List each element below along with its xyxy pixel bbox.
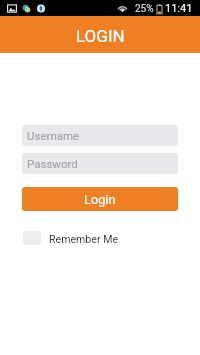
staticText: 11:41: [165, 2, 193, 15]
other: Wi-Fi signal: [117, 4, 128, 13]
button[interactable]: Remember Me: [23, 231, 124, 245]
button[interactable]: Password: [22, 153, 178, 174]
staticText: Password: [27, 157, 78, 170]
staticText: Username: [27, 129, 80, 142]
other: Screenshot captured: [7, 4, 17, 13]
staticText: Remember Me: [49, 233, 118, 245]
button[interactable]: Login: [22, 187, 178, 211]
button[interactable]: Username: [22, 125, 178, 146]
staticText: 25%: [135, 3, 154, 15]
other: Battery 25 percent: [157, 4, 162, 14]
staticText: Login: [84, 192, 116, 207]
staticText: LOGIN: [76, 26, 125, 46]
other: Sync: [22, 4, 31, 13]
other: Update available: [37, 4, 45, 13]
